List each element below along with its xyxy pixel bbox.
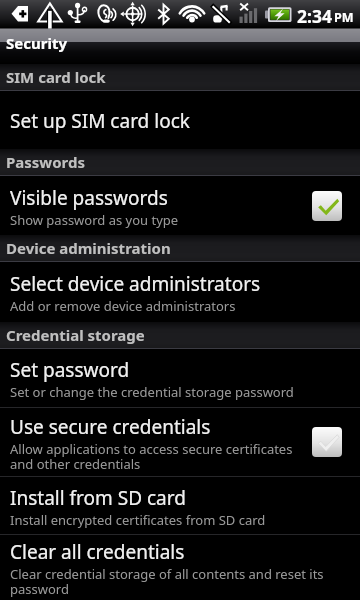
button[interactable]: Install from SD card: [0, 477, 360, 534]
staticText: Use secure credentials: [10, 414, 211, 440]
staticText: Add or remove device administrators: [10, 297, 236, 315]
staticText: Passwords: [6, 152, 85, 172]
staticText: Show password as you type: [10, 211, 179, 229]
staticText: Allow applications to access secure cert…: [10, 440, 293, 473]
staticText: Clear all credentials: [10, 539, 185, 565]
button[interactable]: Select device administrators: [0, 262, 360, 322]
staticText: SIM card lock: [6, 67, 106, 87]
staticText: Select device administrators: [10, 271, 261, 297]
staticText: Security: [6, 33, 67, 53]
button[interactable]: Visible passwords: [0, 176, 360, 235]
staticText: Set or change the credential storage pas…: [10, 383, 294, 401]
staticText: Install encrypted certificates from SD c…: [10, 511, 266, 529]
staticText: Device administration: [6, 238, 171, 258]
button[interactable]: Set password: [0, 349, 360, 407]
staticText: 2:34: [297, 4, 332, 28]
staticText: Set password: [10, 357, 130, 383]
staticText: Credential storage: [6, 325, 145, 345]
button[interactable]: Clear all credentials: [0, 535, 360, 600]
button[interactable]: Use secure credentials: [0, 408, 360, 476]
other: Visible passwords, on: [312, 191, 342, 221]
staticText: Clear credential storage of all contents…: [10, 565, 324, 598]
staticText: Install from SD card: [10, 485, 186, 511]
staticText: Set up SIM card lock: [10, 108, 190, 134]
staticText: Visible passwords: [10, 185, 168, 211]
other: Use secure credentials, off: [312, 427, 342, 457]
button[interactable]: Set up SIM card lock: [0, 91, 360, 149]
staticText: PM: [334, 9, 354, 26]
